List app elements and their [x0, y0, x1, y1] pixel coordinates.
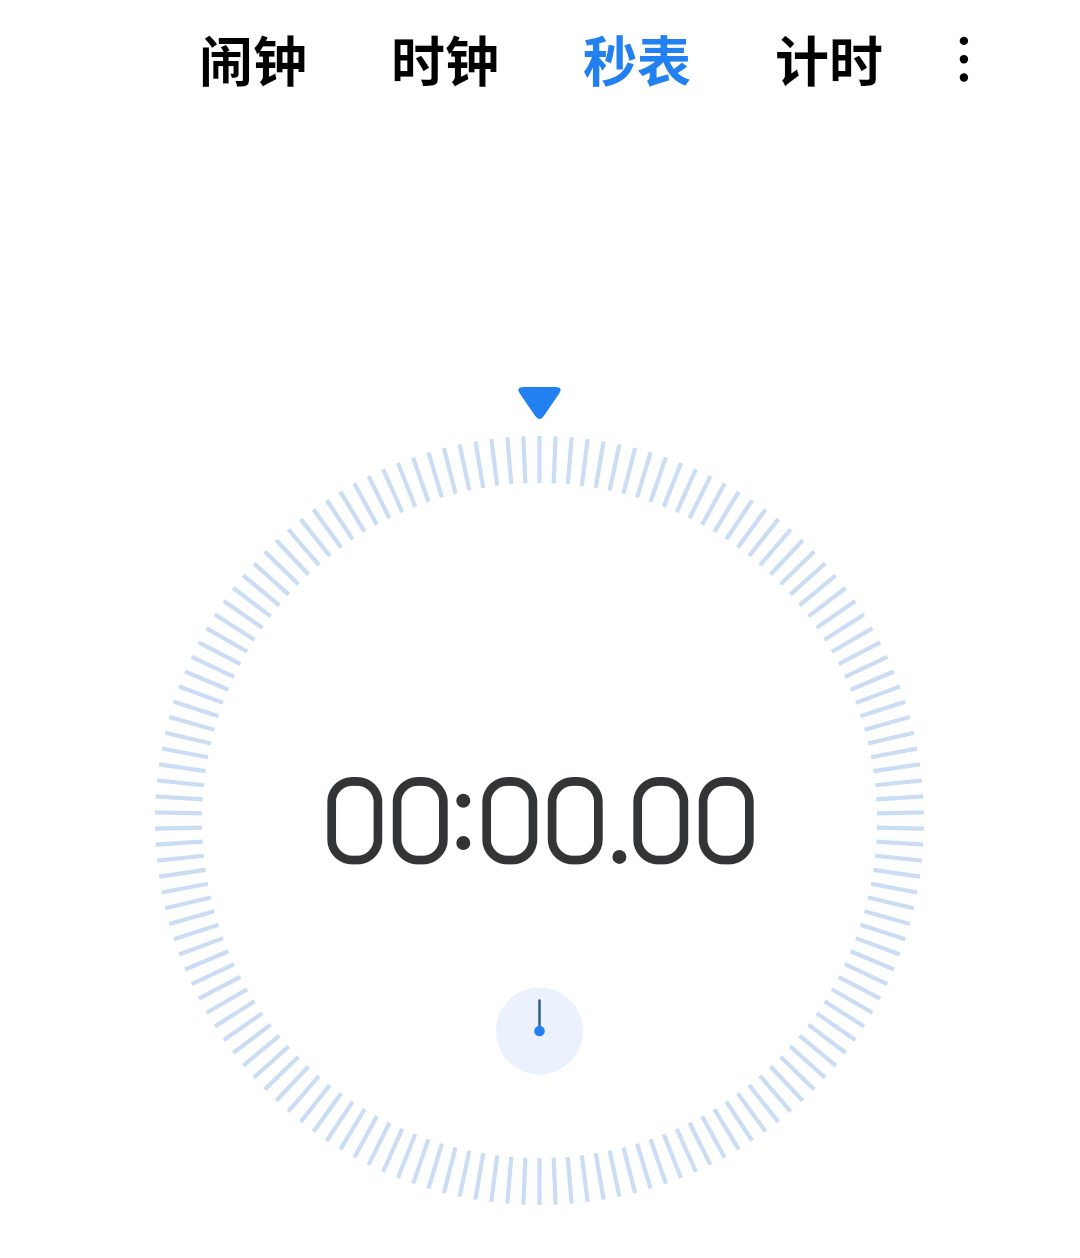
- staticText: 00: [628, 761, 760, 891]
- staticText: 00: [322, 761, 454, 891]
- staticText: 闹钟: [199, 19, 307, 97]
- button[interactable]: 时钟: [349, 0, 541, 115]
- staticText: 秒表: [583, 19, 691, 97]
- button[interactable]: More options: [925, 14, 1013, 102]
- button[interactable]: 闹钟: [157, 0, 349, 115]
- staticText: 时钟: [391, 19, 499, 97]
- staticText: 计时: [775, 19, 883, 97]
- staticText: 00: [477, 761, 609, 891]
- button[interactable]: 秒表: [541, 0, 733, 115]
- button[interactable]: 计时: [733, 0, 925, 115]
